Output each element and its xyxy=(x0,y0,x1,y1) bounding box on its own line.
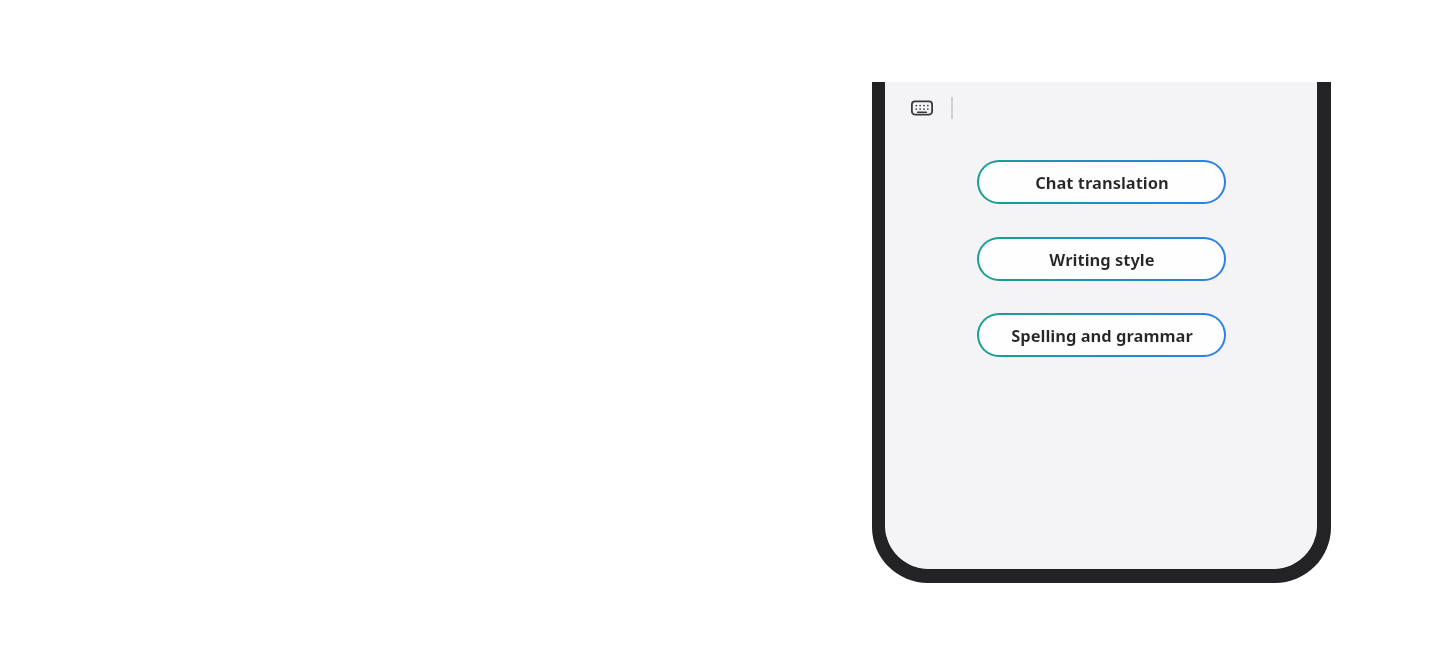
button[interactable]: Keyboard xyxy=(905,91,939,125)
staticText: Writing style xyxy=(1049,248,1155,270)
button[interactable]: Writing style xyxy=(977,237,1226,281)
staticText: Chat translation xyxy=(1035,171,1169,193)
staticText: Spelling and grammar xyxy=(1011,324,1193,346)
button[interactable]: Spelling and grammar xyxy=(977,313,1226,357)
button[interactable]: Chat translation xyxy=(977,160,1226,204)
